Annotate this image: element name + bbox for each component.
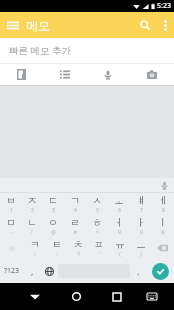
staticText: ;: [34, 251, 36, 258]
button[interactable]: ,: [24, 259, 40, 283]
staticText: ,: [31, 265, 34, 277]
staticText: 8: [162, 207, 165, 214]
button[interactable]: ㅇ: [42, 215, 64, 237]
button[interactable]: Recent apps: [104, 283, 130, 310]
button[interactable]: 빠른 메모 추가: [0, 38, 174, 63]
staticText: ㅏ: [136, 216, 146, 229]
staticText: ㅋ: [30, 238, 40, 251]
staticText: ㄴ: [27, 216, 37, 229]
staticText: -: [10, 229, 12, 236]
staticText: #: [73, 229, 77, 236]
button[interactable]: New note: [0, 64, 43, 85]
staticText: ㅔ: [158, 194, 168, 207]
staticText: &: [161, 229, 165, 236]
staticText: ㅅ: [92, 194, 102, 207]
staticText: ㅓ: [114, 216, 124, 229]
staticText: 1: [10, 207, 13, 214]
staticText: 9: [118, 229, 121, 236]
button[interactable]: ㅗ: [108, 193, 130, 215]
staticText: .: [137, 265, 140, 277]
button[interactable]: ㅈ: [21, 193, 42, 215]
staticText: 2: [31, 207, 34, 214]
button[interactable]: .: [130, 259, 146, 283]
button[interactable]: ㅌ: [46, 237, 67, 259]
staticText: ㅈ: [27, 194, 37, 207]
staticText: ㄷ: [48, 194, 58, 207]
staticText: ㄹ: [70, 216, 80, 229]
button[interactable]: Voice note: [86, 64, 130, 85]
staticText: 3: [52, 207, 55, 214]
staticText: 5:23: [157, 1, 171, 11]
staticText: 4: [74, 207, 77, 214]
button[interactable]: ㄴ: [21, 215, 42, 237]
button[interactable]: ㅠ: [109, 237, 130, 259]
button[interactable]: ㄱ: [64, 193, 86, 215]
staticText: ㅡ: [136, 238, 146, 251]
staticText: !: [31, 229, 33, 236]
staticText: ㅇ: [48, 216, 58, 229]
staticText: 6: [118, 207, 121, 214]
staticText: @: [51, 229, 56, 236]
staticText: 7: [140, 207, 143, 214]
staticText: 5: [96, 207, 99, 214]
staticText: ': [98, 251, 100, 258]
button[interactable]: ㅡ: [130, 237, 151, 259]
staticText: ㅊ: [73, 238, 83, 251]
staticText: ㅗ: [114, 194, 124, 207]
staticText: 0: [140, 229, 143, 236]
button[interactable]: ㅅ: [86, 193, 108, 215]
button[interactable]: ㅂ: [0, 193, 21, 215]
button[interactable]: ㄷ: [42, 193, 64, 215]
staticText: ㅁ: [6, 216, 16, 229]
button[interactable]: Home: [63, 283, 89, 310]
button[interactable]: Photo note: [130, 64, 174, 85]
button[interactable]: ㅍ: [88, 237, 109, 259]
button[interactable]: ㄹ: [64, 215, 86, 237]
staticText: ㅌ: [52, 238, 62, 251]
button[interactable]: Voice input: [160, 181, 169, 190]
staticText: 빠른 메모 추가: [9, 44, 71, 57]
button[interactable]: ㅓ: [108, 215, 130, 237]
staticText: ㅒ: [136, 194, 146, 207]
button[interactable]: ㅊ: [67, 237, 88, 259]
staticText: (: [119, 251, 121, 258]
button[interactable]: New list: [43, 64, 86, 85]
button[interactable]: Change keyboard language: [40, 259, 58, 283]
button[interactable]: Backspace: [151, 237, 174, 259]
button[interactable]: ㅋ: [24, 237, 46, 259]
staticText: :: [56, 251, 58, 258]
staticText: ㅂ: [6, 194, 16, 207]
button[interactable]: Back: [22, 283, 48, 310]
staticText: 메모: [26, 18, 50, 33]
button[interactable]: ?123: [0, 259, 24, 283]
staticText: ?: [77, 251, 80, 258]
staticText: ): [140, 251, 142, 258]
button[interactable]: ㅣ: [152, 215, 174, 237]
button[interactable]: Open navigation drawer: [0, 16, 26, 35]
button[interactable]: ㅒ: [130, 193, 152, 215]
staticText: ㄱ: [70, 194, 80, 207]
staticText: ㅠ: [115, 238, 125, 251]
staticText: ㅍ: [94, 238, 104, 251]
button[interactable]: Search: [133, 13, 157, 37]
button[interactable]: ㅁ: [0, 215, 21, 237]
button[interactable]: More options: [157, 14, 174, 37]
staticText: ㅣ: [158, 216, 168, 229]
button[interactable]: Done: [152, 263, 169, 280]
button[interactable]: ㅏ: [130, 215, 152, 237]
staticText: ^: [96, 229, 99, 236]
button[interactable]: Switch keyboard: [139, 283, 165, 310]
staticText: ?123: [4, 266, 20, 276]
button[interactable]: ㅎ: [86, 215, 108, 237]
button[interactable]: ㅔ: [152, 193, 174, 215]
staticText: ㅎ: [92, 216, 102, 229]
